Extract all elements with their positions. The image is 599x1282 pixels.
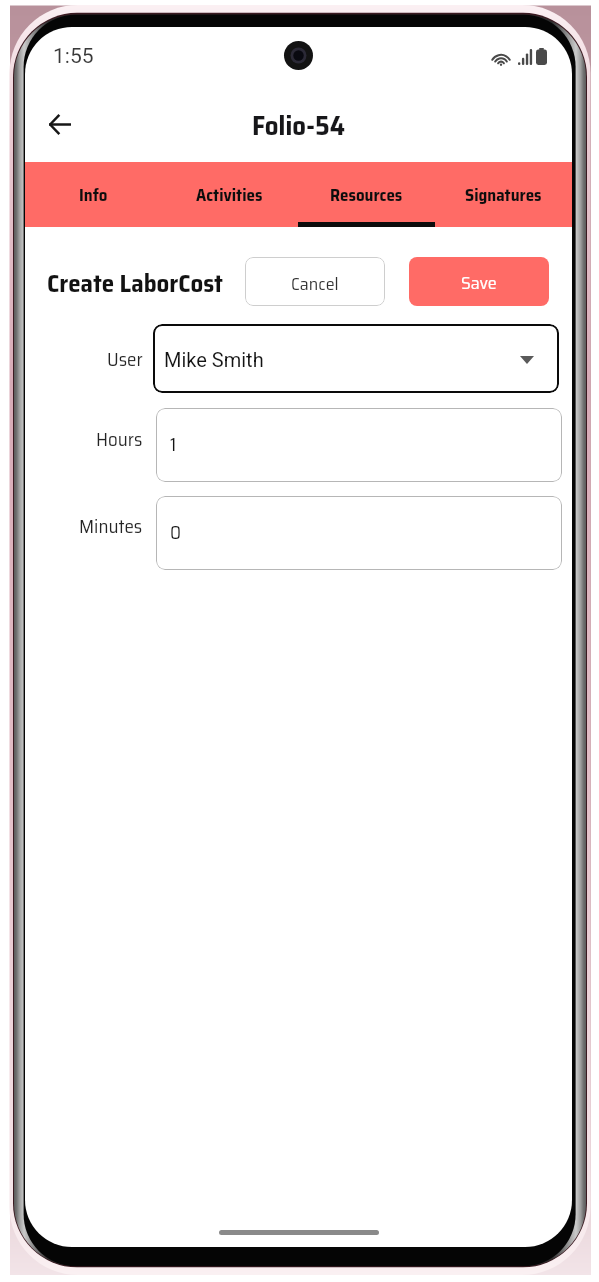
staticText: Info bbox=[79, 182, 108, 209]
staticText: Signatures bbox=[465, 182, 542, 209]
button[interactable]: Back bbox=[36, 100, 84, 148]
button[interactable]: 1 bbox=[156, 408, 562, 482]
staticText: 1:55 bbox=[53, 44, 94, 69]
staticText: 1 bbox=[170, 429, 177, 459]
button[interactable]: Cancel bbox=[245, 257, 385, 306]
staticText: User bbox=[107, 344, 143, 374]
staticText: Folio-54 bbox=[252, 104, 345, 146]
staticText: Mike Smith bbox=[164, 348, 264, 371]
button[interactable]: Resources bbox=[298, 162, 435, 227]
button[interactable]: Activities bbox=[161, 162, 298, 227]
button[interactable]: Save bbox=[409, 257, 549, 306]
staticText: Activities bbox=[196, 182, 263, 209]
button[interactable]: Info bbox=[25, 162, 161, 227]
staticText: 0 bbox=[170, 517, 182, 547]
staticText: Hours bbox=[96, 424, 143, 454]
button[interactable]: Signatures bbox=[435, 162, 572, 227]
button[interactable]: 0 bbox=[156, 496, 562, 570]
staticText: Create LaborCost bbox=[47, 264, 224, 303]
staticText: Minutes bbox=[79, 511, 143, 541]
staticText: Cancel bbox=[291, 270, 339, 298]
staticText: Resources bbox=[330, 182, 403, 209]
button[interactable]: Mike Smith bbox=[153, 324, 559, 393]
staticText: Save bbox=[461, 269, 497, 297]
